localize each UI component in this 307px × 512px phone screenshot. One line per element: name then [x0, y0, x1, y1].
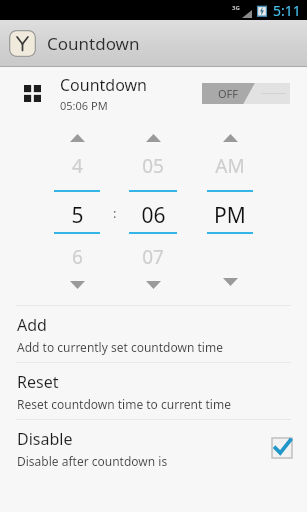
staticText: 06 [141, 201, 166, 225]
button[interactable]: Disable [0, 420, 307, 476]
button[interactable]: Decrement [213, 274, 247, 290]
staticText: Disable [17, 428, 73, 450]
button[interactable]: 06 [123, 201, 183, 225]
button[interactable]: Disable after countdown [271, 437, 293, 459]
staticText: AM [215, 153, 245, 179]
staticText: Reset [17, 371, 59, 393]
staticText: 4 [72, 153, 83, 179]
staticText: : [113, 204, 117, 222]
button[interactable]: Reset [0, 363, 307, 419]
staticText: 5 [71, 201, 84, 225]
staticText: 05 [142, 153, 164, 179]
staticText: 07 [142, 244, 164, 270]
staticText: 05:06 PM [60, 98, 108, 113]
staticText: 6 [72, 244, 83, 270]
button[interactable]: Add [0, 306, 307, 362]
staticText: Countdown [60, 74, 148, 96]
button[interactable]: Increment [60, 130, 94, 146]
staticText: Disable after countdown is [17, 453, 168, 469]
button[interactable]: Decrement [136, 277, 170, 293]
button[interactable]: Increment [136, 130, 170, 146]
staticText: PM [214, 201, 246, 225]
staticText: 3G [232, 4, 240, 12]
button[interactable]: 5 [47, 201, 107, 225]
button[interactable]: Increment [213, 130, 247, 146]
button[interactable]: Countdown enabled toggle [202, 83, 290, 104]
other: Countdown type [24, 85, 41, 102]
button[interactable]: Countdown [0, 20, 307, 67]
staticText: Add to currently set countdown time [17, 339, 223, 355]
button[interactable]: Countdown type [0, 67, 307, 120]
staticText: Add [17, 314, 47, 336]
button[interactable]: PM [200, 201, 260, 225]
button[interactable]: Decrement [60, 277, 94, 293]
staticText: OFF [218, 86, 239, 101]
staticText: Reset countdown time to current time [17, 396, 231, 412]
staticText: 5:11 [273, 1, 301, 20]
staticText: Countdown [47, 32, 140, 55]
